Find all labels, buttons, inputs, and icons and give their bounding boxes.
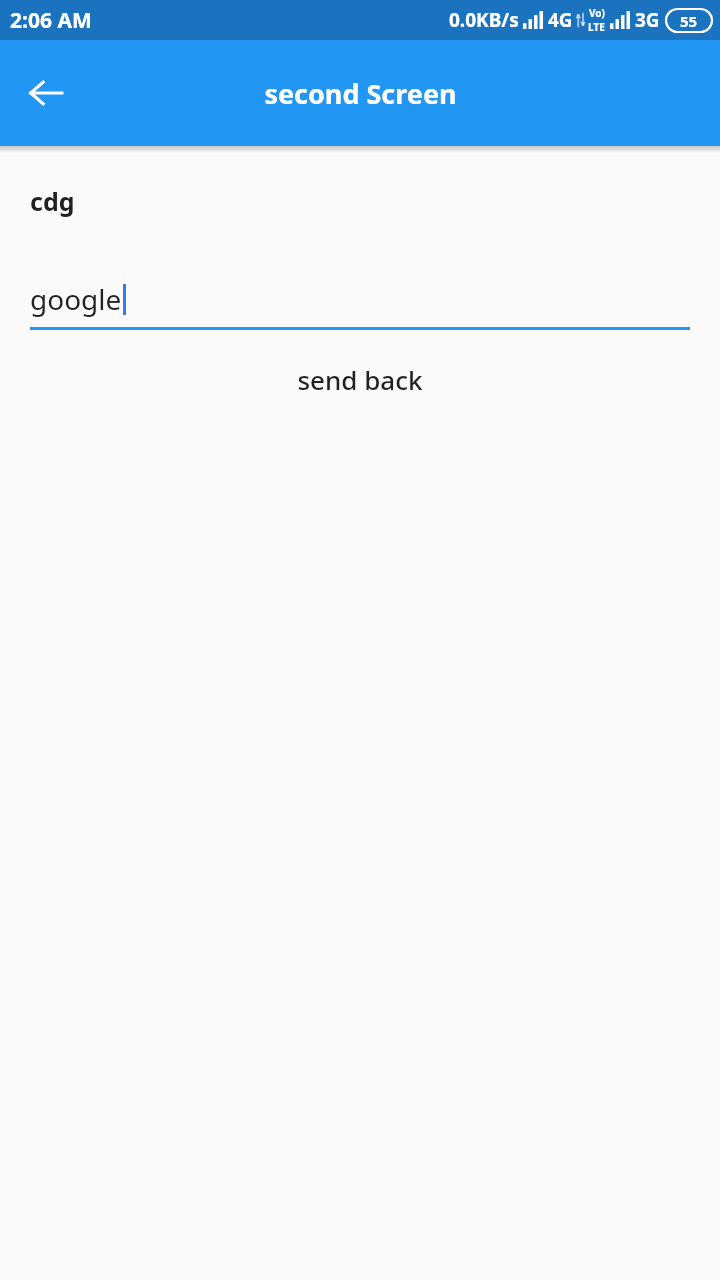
button[interactable]: Back: [18, 65, 74, 121]
staticText: 2:06 AM: [10, 6, 92, 35]
button[interactable]: google: [30, 280, 690, 330]
staticText: cdg: [30, 184, 75, 218]
staticText: Vo): [589, 6, 605, 20]
staticText: 55: [680, 11, 698, 31]
staticText: send back: [297, 362, 423, 397]
staticText: google: [30, 280, 122, 318]
staticText: 0.0KB/s: [449, 7, 519, 33]
staticText: 3G: [635, 7, 660, 33]
staticText: 4G: [548, 7, 573, 33]
staticText: second Screen: [264, 75, 457, 112]
button[interactable]: send back: [0, 362, 720, 397]
staticText: LTE: [588, 20, 605, 34]
